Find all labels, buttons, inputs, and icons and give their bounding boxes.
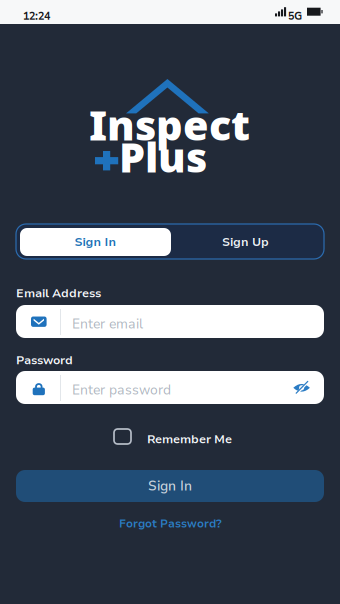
button[interactable]: Forgot Password? (119, 516, 222, 531)
button[interactable]: Sign In (20, 228, 171, 256)
staticText: Email Address (16, 285, 101, 301)
staticText: Password (16, 352, 73, 368)
staticText: Forgot Password? (119, 516, 222, 531)
button[interactable]: Remember Me (114, 426, 230, 448)
staticText: 5G (288, 9, 302, 23)
staticText: Enter email (72, 315, 143, 333)
staticText: Sign In (74, 234, 116, 250)
button[interactable]: Sign Up (171, 228, 320, 256)
staticText: Plus (119, 129, 207, 184)
staticText: Enter password (72, 381, 171, 399)
staticText: Remember Me (147, 431, 232, 447)
button[interactable]: Show password (293, 382, 310, 394)
staticText: Sign Up (222, 234, 269, 250)
staticText: 12:24 (23, 9, 50, 23)
staticText: Inspect (89, 97, 250, 152)
button[interactable]: Sign In (16, 470, 324, 502)
staticText: Sign In (148, 477, 192, 495)
